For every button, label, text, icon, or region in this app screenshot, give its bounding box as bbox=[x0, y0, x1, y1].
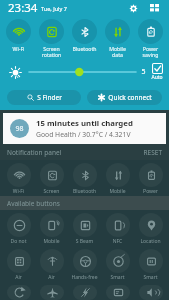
button[interactable]: Mobile data bbox=[101, 160, 134, 196]
button[interactable]: Do not disturb bbox=[2, 210, 35, 246]
staticText: Air gesture bbox=[35, 274, 68, 282]
button[interactable]: Quick connect bbox=[87, 90, 162, 105]
staticText: Quick connect bbox=[108, 93, 152, 102]
button[interactable]: Smart stay bbox=[101, 246, 134, 282]
staticText: Mobile hotspot bbox=[35, 238, 68, 246]
staticText: Mobile data bbox=[101, 45, 134, 58]
staticText: Good Health / 30.7°C / 4.321V bbox=[36, 130, 131, 139]
button[interactable]: Wi-Fi bbox=[2, 16, 35, 52]
button[interactable]: Airplane mode bbox=[35, 282, 68, 300]
staticText: Power saving bbox=[134, 45, 167, 58]
button[interactable]: Smart pause bbox=[134, 246, 167, 282]
staticText: 98 bbox=[15, 124, 24, 134]
button[interactable]: Screen rotation bbox=[35, 16, 68, 58]
staticText: Location bbox=[134, 238, 167, 245]
button[interactable]: 98 bbox=[3, 113, 166, 144]
staticText: Power saving bbox=[134, 188, 167, 196]
button[interactable] bbox=[29, 63, 136, 81]
staticText: Notification panel bbox=[7, 148, 62, 157]
button[interactable]: Settings bbox=[125, 0, 141, 16]
staticText: Smart stay bbox=[101, 274, 134, 282]
button[interactable]: Reading mode bbox=[101, 282, 134, 300]
button[interactable]: Wi-Fi bbox=[2, 160, 35, 195]
button[interactable]: NFC bbox=[101, 210, 134, 245]
button[interactable]: S Finder bbox=[7, 90, 81, 105]
staticText: 23:34 bbox=[8, 0, 38, 16]
button[interactable]: Air view bbox=[2, 246, 35, 282]
button[interactable]: Air gesture bbox=[35, 246, 68, 282]
button[interactable]: Bluetooth bbox=[68, 16, 101, 52]
button[interactable]: Mobile hotspot bbox=[35, 210, 68, 246]
staticText: Available buttons bbox=[7, 199, 60, 208]
staticText: NFC bbox=[101, 238, 134, 245]
staticText: Bluetooth bbox=[68, 45, 101, 52]
button[interactable]: Screen rotation bbox=[35, 160, 68, 196]
staticText: Air view bbox=[2, 274, 35, 282]
staticText: Screen rotation bbox=[35, 188, 68, 196]
button[interactable]: Bluetooth bbox=[68, 160, 101, 195]
button[interactable]: Power saving bbox=[134, 16, 167, 58]
staticText: Auto bbox=[151, 74, 163, 81]
button[interactable]: Location bbox=[134, 210, 167, 245]
staticText: Wi-Fi bbox=[2, 188, 35, 195]
staticText: Hands-free mode bbox=[68, 274, 101, 282]
staticText: Wi-Fi bbox=[2, 45, 35, 52]
button[interactable]: Power saving bbox=[134, 160, 167, 196]
staticText: Mobile data bbox=[101, 188, 134, 196]
staticText: Smart pause bbox=[134, 274, 167, 282]
button[interactable]: S Beam bbox=[68, 210, 101, 245]
button[interactable]: Auto bbox=[151, 63, 163, 81]
button[interactable]: Mobile data bbox=[101, 16, 134, 58]
staticText: Bluetooth bbox=[68, 188, 101, 195]
button[interactable]: Hands-free mode bbox=[68, 246, 101, 282]
staticText: Screen rotation bbox=[35, 45, 68, 58]
staticText: 15 minutes until charged bbox=[36, 118, 133, 129]
button[interactable]: Sync bbox=[2, 282, 35, 300]
staticText: Do not disturb bbox=[2, 238, 35, 246]
staticText: S Finder bbox=[37, 93, 62, 102]
staticText: S Beam bbox=[68, 238, 101, 245]
button[interactable]: RESET bbox=[143, 148, 162, 157]
staticText: Tue, July 7 bbox=[41, 5, 67, 12]
button[interactable]: Flash bbox=[68, 282, 101, 300]
button[interactable]: Edit quick settings bbox=[146, 0, 162, 16]
staticText: RESET bbox=[143, 148, 162, 157]
button[interactable]: Sound bbox=[134, 282, 167, 300]
staticText: 5 bbox=[141, 67, 146, 77]
